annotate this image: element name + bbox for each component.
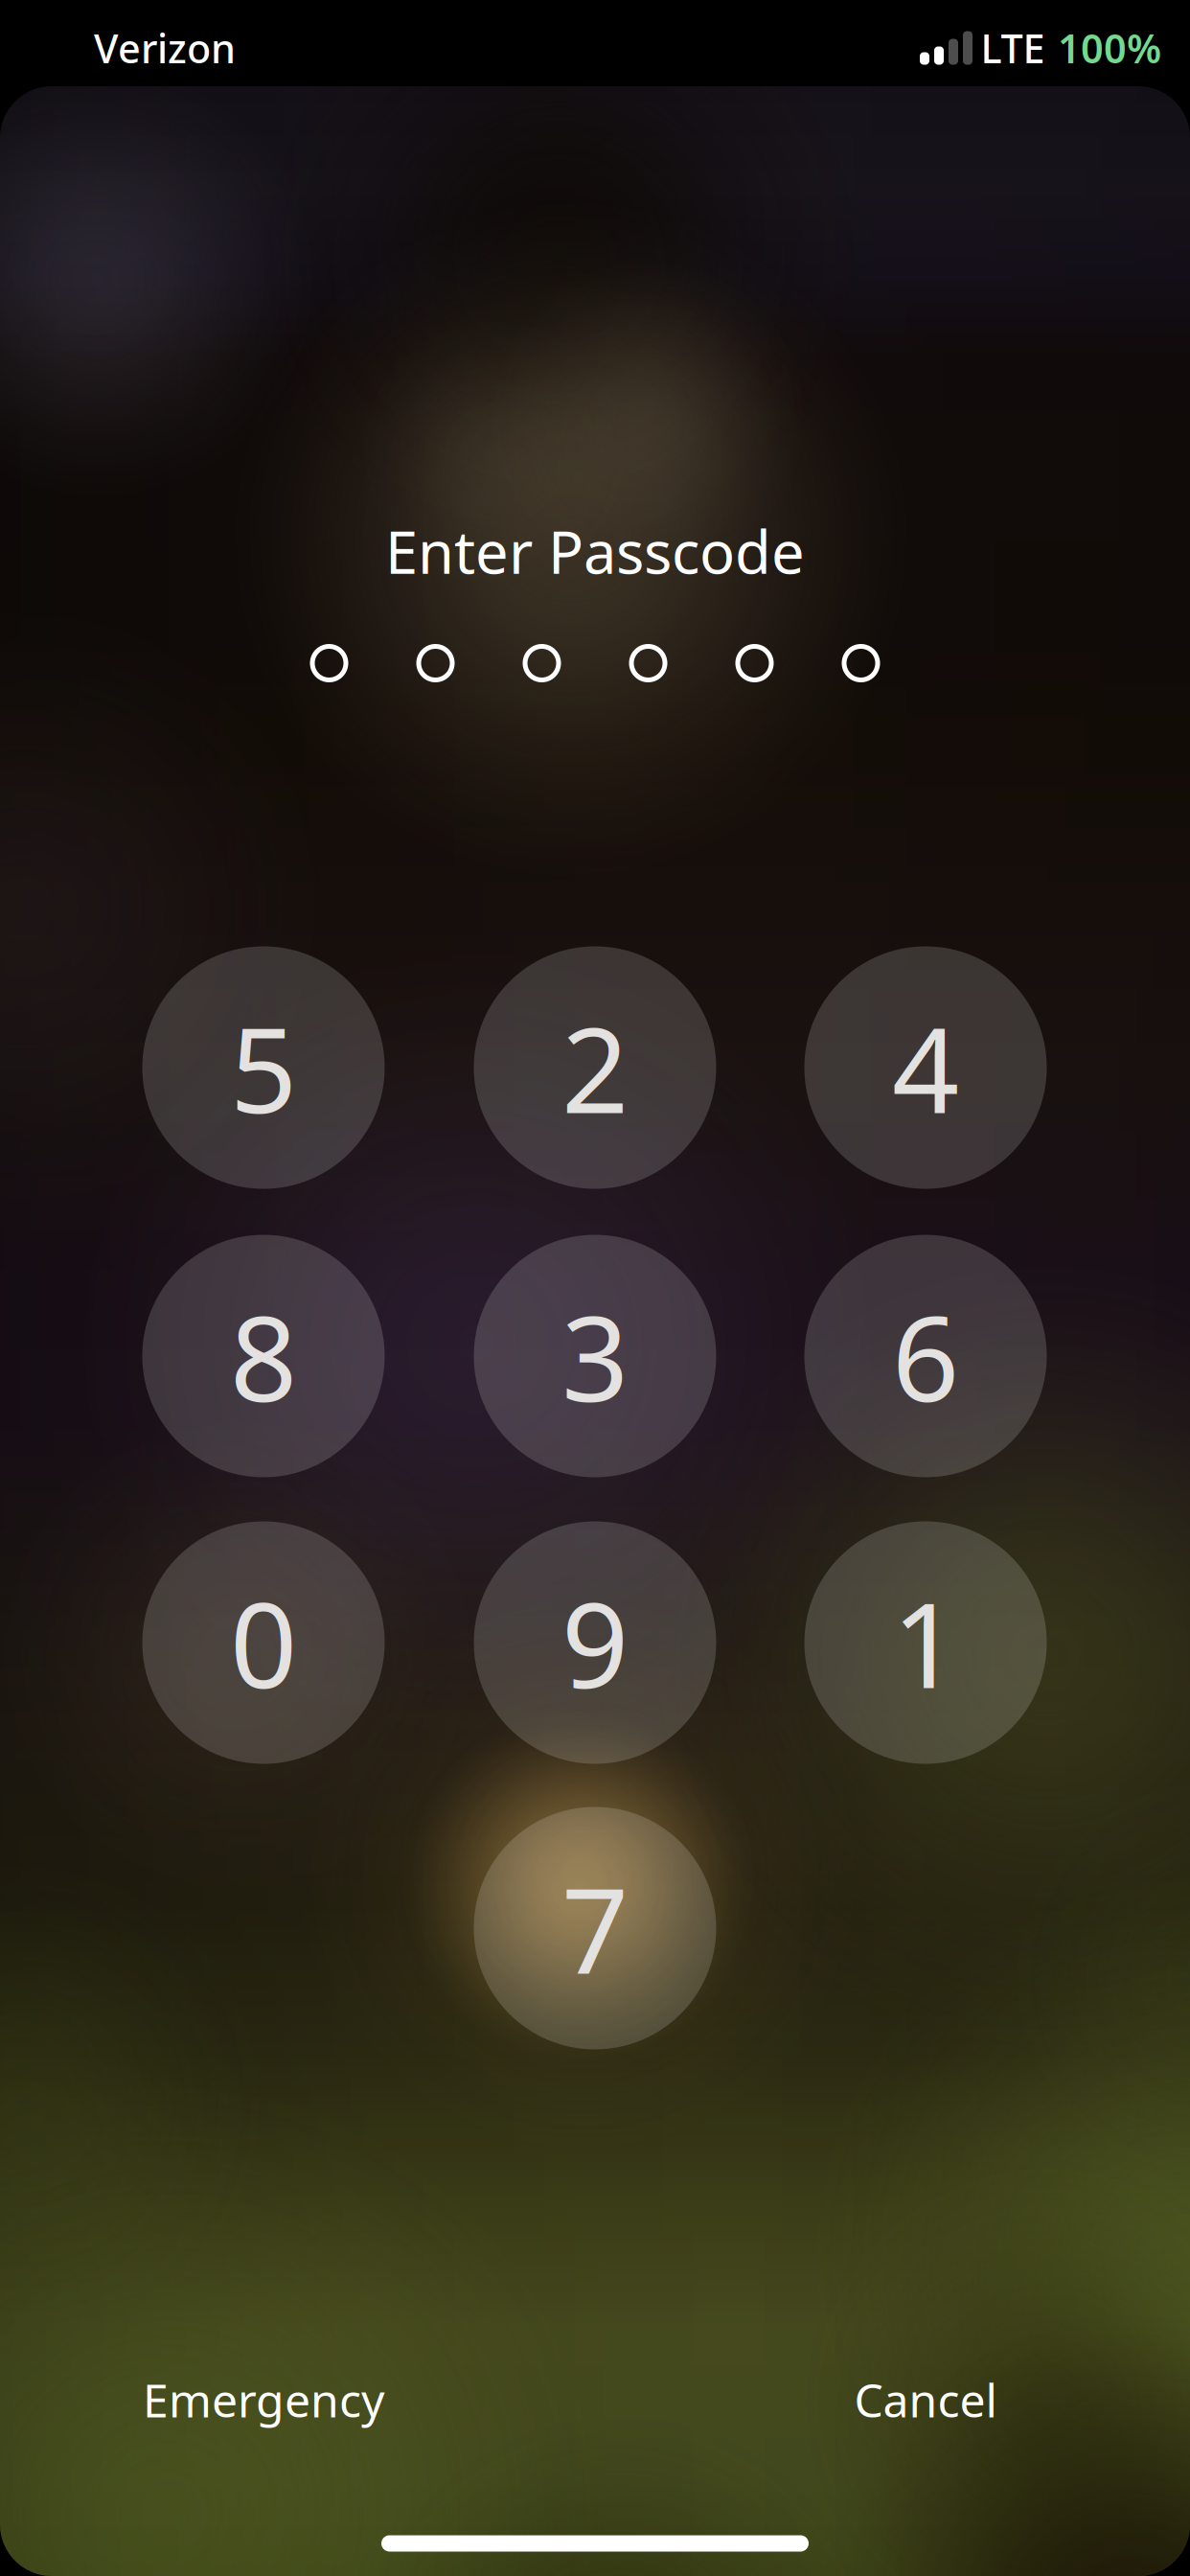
staticText: 7 (561, 1850, 629, 2006)
staticText: 8 (230, 1278, 297, 1434)
button[interactable]: 0 (142, 1521, 385, 1764)
staticText: 0 (230, 1565, 297, 1721)
button[interactable]: 9 (474, 1521, 716, 1764)
staticText: 9 (561, 1565, 629, 1721)
staticText: 2 (561, 990, 629, 1146)
staticText: 6 (892, 1278, 959, 1434)
button[interactable]: Emergency (62, 2354, 465, 2446)
staticText: 3 (561, 1278, 629, 1434)
staticText: Cancel (854, 2369, 997, 2430)
button[interactable]: 6 (804, 1235, 1047, 1477)
staticText: 100% (1058, 22, 1161, 74)
button[interactable]: 4 (804, 946, 1047, 1189)
staticText: 5 (230, 990, 297, 1146)
button[interactable]: 3 (474, 1235, 716, 1477)
button[interactable]: 2 (474, 946, 716, 1189)
staticText: LTE (981, 22, 1045, 74)
button[interactable]: 7 (474, 1807, 716, 2049)
staticText: 1 (892, 1565, 959, 1721)
staticText: 4 (892, 990, 959, 1146)
button[interactable]: 1 (804, 1521, 1047, 1764)
button[interactable]: Cancel (724, 2354, 1127, 2446)
button[interactable]: 5 (142, 946, 385, 1189)
staticText: Enter Passcode (385, 512, 805, 590)
staticText: Verizon (94, 22, 236, 74)
button[interactable]: 8 (142, 1235, 385, 1477)
staticText: Emergency (143, 2369, 384, 2430)
